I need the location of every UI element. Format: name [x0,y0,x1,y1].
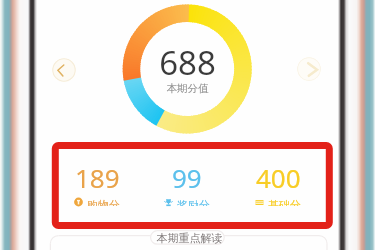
staticText: 688 [137,40,238,85]
staticText: 本期重点解读 [152,231,227,245]
button[interactable]: Previous period [52,58,76,82]
staticText: 奖励分 [177,198,210,206]
staticText: 购物分 [87,198,120,206]
button[interactable]: 189 [52,160,142,206]
staticText: 189 [75,160,120,195]
button[interactable]: Next period [297,57,321,81]
button[interactable]: 99 [142,160,232,206]
staticText: 基础分 [268,198,301,206]
staticText: 400 [256,160,301,195]
staticText: 本期分值 [137,82,238,95]
staticText: 99 [172,160,202,195]
button[interactable]: 400 [233,160,323,206]
